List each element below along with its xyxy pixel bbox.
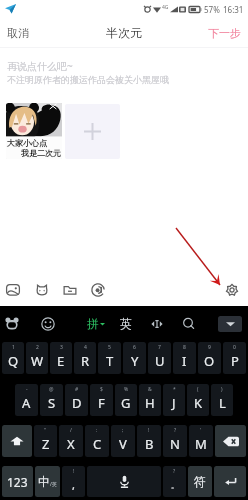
button[interactable]: " [34, 425, 57, 457]
button[interactable]: 英 [117, 306, 135, 341]
button[interactable]: # [65, 384, 88, 416]
button[interactable]: Emoji [38, 306, 58, 341]
button[interactable]: Add image [65, 104, 120, 159]
button[interactable]: ; [111, 425, 135, 457]
button[interactable]: Stickers [31, 279, 53, 301]
button[interactable]: ? [163, 466, 186, 497]
button[interactable]: Voice input [87, 466, 161, 497]
button[interactable]: Backspace [215, 425, 246, 457]
button[interactable]: 8 [173, 342, 196, 374]
button[interactable]: 2 [26, 342, 48, 374]
button[interactable]: $ [90, 384, 113, 416]
staticText: % [124, 386, 129, 393]
staticText: 中 [38, 474, 50, 489]
staticText: - [26, 386, 28, 393]
staticText: O [204, 352, 215, 370]
button[interactable]: 下一步 [201, 18, 248, 47]
button[interactable]: ! [137, 425, 161, 457]
staticText: $ [100, 386, 103, 393]
staticText: ! [73, 468, 75, 475]
staticText: 半次元 [106, 25, 142, 40]
staticText: & [148, 386, 152, 393]
staticText: G [121, 394, 131, 412]
staticText: A [22, 394, 31, 412]
staticText: @ [49, 386, 54, 393]
button[interactable]: Settings [221, 279, 243, 301]
button[interactable]: Search [179, 306, 199, 341]
button[interactable]: 拼 [84, 306, 108, 341]
staticText: * [173, 386, 176, 393]
button[interactable]: Folder [59, 279, 81, 301]
staticText: D [72, 394, 82, 412]
staticText: ( [197, 386, 199, 393]
staticText: N [170, 435, 180, 453]
staticText: K [194, 394, 203, 412]
staticText: 我是二次元 [6, 148, 61, 158]
button[interactable]: 1 [2, 342, 24, 374]
button[interactable]: Cursor [147, 306, 167, 341]
button[interactable]: 0 [223, 342, 246, 374]
staticText: 4G [162, 4, 169, 11]
button[interactable]: 5 [98, 342, 121, 374]
staticText: H [145, 394, 155, 412]
button[interactable]: % [115, 384, 137, 416]
staticText: L [219, 394, 226, 412]
button[interactable]: ? [163, 425, 187, 457]
staticText: 7 [158, 344, 161, 351]
staticText: / [70, 427, 72, 434]
button[interactable]: Selected photo [6, 103, 62, 159]
button[interactable]: Hide keyboard [218, 316, 242, 332]
button[interactable]: & [139, 384, 161, 416]
button[interactable]: 123 [2, 466, 33, 497]
button[interactable]: ( [187, 384, 209, 416]
button[interactable]: @ [40, 384, 63, 416]
staticText: ) [221, 386, 223, 393]
button[interactable]: 9 [198, 342, 221, 374]
staticText: 3 [60, 344, 63, 351]
button[interactable]: Enter [214, 466, 246, 497]
button[interactable]: 7 [148, 342, 171, 374]
button[interactable]: ' [189, 425, 213, 457]
staticText: 大家小心点 [7, 138, 47, 148]
staticText: 再说点什么吧~ [7, 59, 73, 73]
staticText: 符 [194, 474, 206, 489]
button[interactable]: 取消 [0, 18, 36, 47]
staticText: R [81, 352, 90, 370]
staticText: ? [174, 427, 177, 434]
button[interactable]: 4 [74, 342, 96, 374]
staticText: 。 [171, 480, 179, 490]
staticText: ' [200, 427, 202, 434]
staticText: , [72, 477, 75, 492]
button[interactable]: / [59, 425, 83, 457]
button[interactable]: 中 [35, 466, 60, 497]
button[interactable]: Shift [2, 425, 32, 457]
staticText: 英 [120, 316, 132, 331]
button[interactable]: 3 [50, 342, 72, 374]
staticText: ; [122, 427, 124, 434]
button[interactable]: 符 [188, 466, 212, 497]
staticText: T [106, 352, 114, 370]
button[interactable]: ) [211, 384, 233, 416]
button[interactable]: * [163, 384, 185, 416]
staticText: J [172, 394, 176, 412]
staticText: " [44, 427, 47, 434]
button[interactable]: Mention [87, 279, 109, 301]
staticText: 8 [183, 344, 186, 351]
button[interactable]: Gallery [2, 279, 24, 301]
button[interactable]: - [15, 384, 38, 416]
button[interactable]: Input method [2, 306, 22, 341]
staticText: # [75, 386, 79, 393]
staticText: M [195, 435, 207, 453]
staticText: Z [42, 435, 50, 453]
staticText: 16:31 [223, 4, 244, 15]
staticText: Q [8, 352, 19, 370]
button[interactable]: : [85, 425, 109, 457]
staticText: /英 [50, 481, 57, 488]
staticText: V [119, 435, 127, 453]
staticText: 不注明原作者的搬运作品会被关小黑屋哦 [7, 74, 169, 85]
button[interactable]: 6 [123, 342, 146, 374]
staticText: 1 [12, 344, 15, 351]
staticText: X [67, 435, 75, 453]
staticText: 取消 [7, 26, 29, 40]
button[interactable]: ! [62, 466, 85, 497]
